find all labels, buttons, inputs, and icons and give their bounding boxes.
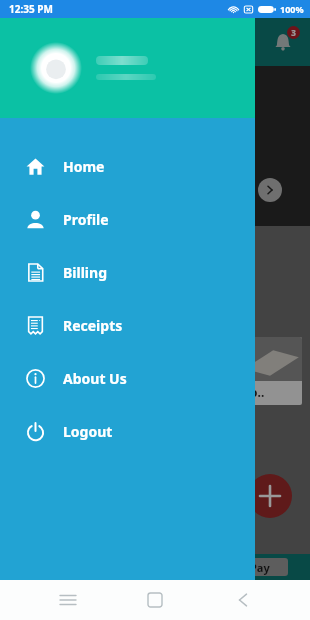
- button[interactable]: Home: [0, 140, 255, 193]
- button[interactable]: Home: [135, 580, 175, 620]
- staticText: Home: [63, 157, 105, 176]
- staticText: Profile: [63, 210, 109, 229]
- button[interactable]: Logout: [0, 405, 255, 458]
- staticText: 100%: [280, 3, 304, 15]
- staticText: About Us: [63, 369, 127, 388]
- button[interactable]: Back: [223, 580, 263, 620]
- staticText: To..: [244, 384, 265, 400]
- staticText: Pay: [250, 560, 270, 575]
- button[interactable]: Receipts: [0, 299, 255, 352]
- button[interactable]: To..: [238, 337, 302, 405]
- button[interactable]: Recent apps: [48, 580, 88, 620]
- button[interactable]: Add: [248, 474, 292, 518]
- button[interactable]: Profile: [0, 193, 255, 246]
- staticText: Billing: [63, 263, 107, 282]
- button[interactable]: Next: [258, 178, 282, 202]
- button[interactable]: Billing: [0, 246, 255, 299]
- button[interactable]: [0, 18, 255, 118]
- staticText: Logout: [63, 422, 113, 441]
- button[interactable]: Notifications: [268, 27, 298, 57]
- button[interactable]: Pay: [232, 558, 288, 576]
- staticText: 12:35 PM: [9, 2, 53, 16]
- staticText: Receipts: [63, 316, 123, 335]
- button[interactable]: About Us: [0, 352, 255, 405]
- staticText: 3: [291, 27, 296, 38]
